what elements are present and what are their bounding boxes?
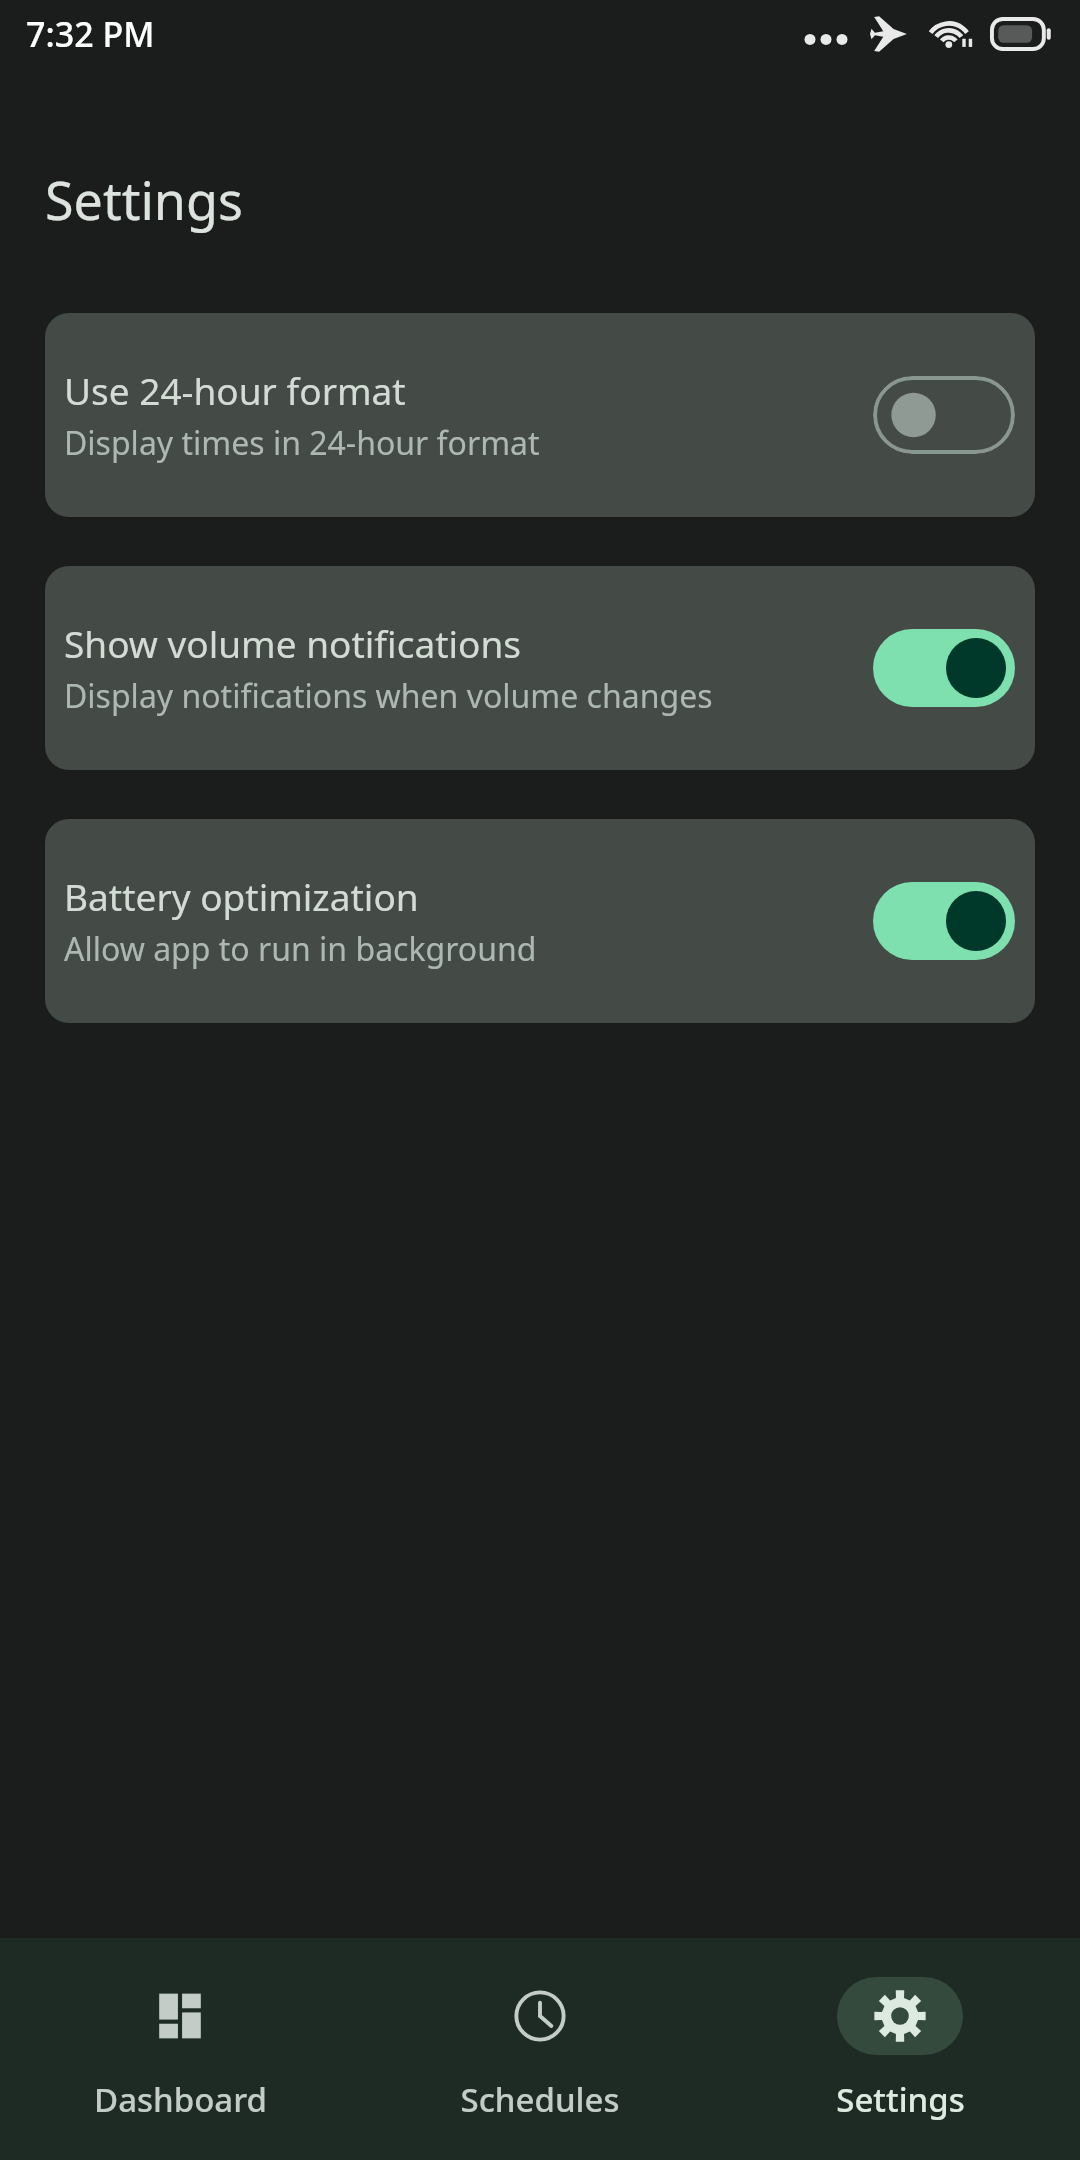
button[interactable]: Enabled (873, 629, 1015, 707)
button[interactable]: Enabled (873, 882, 1015, 960)
staticText: Use 24-hour format (64, 365, 406, 415)
staticText: Battery optimization (64, 871, 419, 921)
button[interactable]: Settings (720, 1938, 1080, 2160)
staticText: 7:32 PM (26, 11, 155, 57)
button[interactable]: Show volume notifications (45, 566, 1035, 770)
staticText: Dashboard (94, 2077, 267, 2122)
button[interactable]: Use 24-hour format (45, 313, 1035, 517)
staticText: Settings (836, 2077, 965, 2122)
staticText: Display times in 24-hour format (64, 421, 540, 465)
staticText: Show volume notifications (64, 618, 522, 668)
staticText: Schedules (460, 2077, 620, 2122)
button[interactable]: Disabled (873, 376, 1015, 454)
button[interactable]: Dashboard (0, 1938, 360, 2160)
staticText: Allow app to run in background (64, 927, 537, 971)
staticText: Settings (45, 164, 243, 235)
button[interactable]: Schedules (360, 1938, 720, 2160)
button[interactable]: Battery optimization (45, 819, 1035, 1023)
staticText: Display notifications when volume change… (64, 674, 713, 718)
